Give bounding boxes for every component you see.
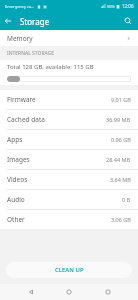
button[interactable]: Back: [0, 13, 16, 29]
staticText: Cached data: [7, 115, 45, 124]
button[interactable]: Images: [0, 150, 138, 169]
staticText: 0.96 GB: [111, 136, 131, 143]
staticText: 0 B: [122, 196, 131, 203]
staticText: Storage: [20, 16, 50, 27]
staticText: 56%: [107, 4, 115, 9]
staticText: 3.06 GB: [111, 216, 131, 223]
button[interactable]: Back: [23, 284, 39, 300]
staticText: 3.64 MB: [110, 176, 131, 183]
staticText: 28.44 MB: [106, 156, 131, 163]
button[interactable]: Memory: [0, 30, 138, 46]
staticText: Total 128 GB, available: 115 GB: [7, 63, 94, 71]
staticText: 36.99 MB: [106, 116, 131, 123]
staticText: Other: [7, 215, 25, 224]
staticText: Videos: [7, 175, 28, 184]
staticText: 9.01 GB: [111, 96, 131, 103]
button[interactable]: Videos: [0, 170, 138, 189]
button[interactable]: Firmware: [0, 90, 138, 109]
button[interactable]: Recent apps: [100, 284, 116, 300]
button[interactable]: Other: [0, 210, 138, 229]
staticText: Firmware: [7, 95, 36, 104]
staticText: 12:06: [122, 3, 134, 9]
staticText: Images: [7, 155, 30, 164]
staticText: CLEAN UP: [55, 266, 84, 274]
button[interactable]: Cached data: [0, 110, 138, 129]
staticText: Audio: [7, 195, 25, 204]
staticText: Apps: [7, 135, 23, 144]
button[interactable]: Audio: [0, 190, 138, 209]
staticText: INTERNAL STORAGE: [7, 50, 55, 57]
button[interactable]: Apps: [0, 130, 138, 149]
button[interactable]: Home: [61, 284, 77, 300]
staticText: Emergency ca...: [5, 4, 35, 9]
button[interactable]: Search: [120, 13, 136, 29]
staticText: Memory: [7, 34, 33, 43]
button[interactable]: CLEAN UP: [6, 262, 132, 278]
